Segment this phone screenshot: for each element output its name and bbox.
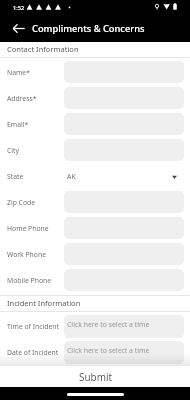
staticText: Mobile Phone bbox=[7, 276, 52, 285]
button[interactable]: Home Phone bbox=[0, 217, 190, 243]
staticText: Email* bbox=[7, 120, 29, 129]
button[interactable]: Email* bbox=[0, 113, 190, 139]
staticText: City bbox=[7, 146, 19, 155]
button[interactable]: State bbox=[0, 165, 190, 191]
staticText: Name* bbox=[7, 68, 30, 77]
button[interactable]: Time of Incident bbox=[0, 315, 190, 341]
button[interactable]: Mobile Phone bbox=[0, 269, 190, 295]
button[interactable]: Address* bbox=[0, 87, 190, 113]
staticText: Time of Incident bbox=[7, 322, 59, 331]
staticText: State bbox=[7, 172, 24, 181]
button[interactable]: City bbox=[0, 139, 190, 165]
button[interactable]: Submit bbox=[2, 366, 188, 387]
staticText: Click here to select a time bbox=[67, 346, 150, 355]
button[interactable]: Zip Code bbox=[0, 191, 190, 217]
button[interactable]: Navigate up bbox=[0, 15, 31, 42]
staticText: 1:52 bbox=[13, 4, 25, 12]
staticText: Submit bbox=[79, 370, 112, 383]
staticText: Date of Incident bbox=[7, 348, 59, 357]
staticText: Zip Code bbox=[7, 198, 36, 207]
staticText: Compliments & Concerns bbox=[32, 22, 145, 35]
staticText: Address* bbox=[7, 94, 37, 103]
staticText: Click here to select a time bbox=[67, 320, 150, 329]
button[interactable]: Name* bbox=[0, 61, 190, 87]
staticText: Work Phone bbox=[7, 250, 46, 259]
button[interactable]: Date of Incident bbox=[0, 341, 190, 367]
staticText: Contact Information bbox=[7, 44, 79, 54]
staticText: AK bbox=[67, 172, 76, 181]
button[interactable]: Work Phone bbox=[0, 243, 190, 269]
staticText: Home Phone bbox=[7, 224, 49, 233]
staticText: Incident Information bbox=[7, 298, 81, 308]
